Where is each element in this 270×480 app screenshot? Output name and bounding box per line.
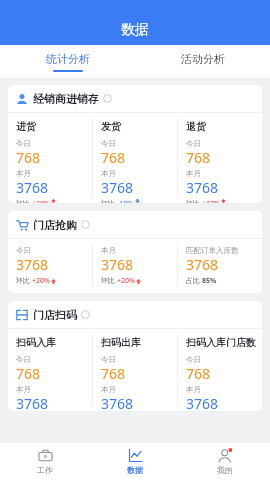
staticText: 活动分析	[181, 52, 225, 66]
staticText: 今日	[16, 246, 31, 255]
staticText: +20%	[32, 199, 50, 203]
staticText: 今日	[186, 355, 201, 364]
staticText: 今日	[101, 355, 116, 364]
staticText: 3768	[186, 255, 219, 274]
staticText: 768	[101, 364, 126, 383]
button[interactable]: 数据	[90, 443, 180, 480]
button[interactable]: 说明	[81, 310, 90, 319]
button[interactable]: 工作	[0, 443, 90, 480]
staticText: 768	[16, 148, 41, 167]
staticText: 本月	[186, 385, 201, 394]
staticText: 768	[186, 364, 211, 383]
staticText: 环比	[101, 276, 117, 286]
staticText: 3768	[16, 255, 49, 274]
staticText: 本月	[16, 385, 31, 394]
staticText: 今日	[16, 139, 31, 148]
staticText: 门店抢购	[33, 218, 77, 232]
staticText: 今日	[101, 139, 116, 148]
staticText: 3768	[101, 394, 134, 411]
staticText: 工作	[37, 465, 53, 475]
staticText: 今日	[186, 139, 201, 148]
button[interactable]: 说明	[81, 220, 90, 229]
staticText: 统计分析	[46, 52, 90, 66]
staticText: 768	[186, 148, 211, 167]
staticText: 数据	[127, 465, 143, 475]
staticText: 本月	[186, 169, 201, 178]
button[interactable]: 经销商进销存	[8, 85, 262, 203]
button[interactable]: 门店扫码	[8, 301, 262, 411]
staticText: 3768	[101, 255, 134, 274]
staticText: 3768	[16, 178, 49, 197]
staticText: 发货	[101, 120, 121, 133]
staticText: 环比	[101, 199, 117, 203]
staticText: -10%	[117, 199, 134, 203]
staticText: 85%	[202, 276, 217, 286]
staticText: 本月	[101, 385, 116, 394]
staticText: 3768	[186, 394, 219, 411]
button[interactable]: 门店抢购	[8, 211, 262, 293]
staticText: 进货	[16, 120, 36, 133]
staticText: 本月	[101, 169, 116, 178]
staticText: +20%	[117, 276, 135, 286]
staticText: 扫码入库门店数	[186, 336, 256, 349]
staticText: 3768	[16, 394, 49, 411]
staticText: 匹配订单入库数	[186, 246, 239, 255]
staticText: 扫码出库	[101, 336, 141, 349]
staticText: 扫码入库	[16, 336, 56, 349]
staticText: +13%	[202, 199, 220, 203]
staticText: 数据	[121, 21, 149, 39]
staticText: 3768	[186, 178, 219, 197]
button[interactable]: 我的	[180, 443, 270, 480]
button[interactable]: 活动分析	[135, 45, 270, 78]
staticText: 3768	[101, 178, 134, 197]
staticText: 本月	[101, 246, 116, 255]
staticText: 我的	[217, 465, 233, 475]
staticText: 占比	[186, 276, 202, 286]
staticText: 门店扫码	[33, 308, 77, 322]
staticText: 经销商进销存	[33, 92, 99, 106]
staticText: 今日	[16, 355, 31, 364]
button[interactable]: 统计分析	[0, 45, 135, 78]
staticText: 本月	[16, 169, 31, 178]
staticText: 环比	[16, 199, 32, 203]
staticText: +20%	[32, 276, 50, 286]
staticText: 环比	[16, 276, 32, 286]
staticText: 退货	[186, 120, 206, 133]
staticText: 768	[16, 364, 41, 383]
button[interactable]: 说明	[103, 94, 112, 103]
staticText: 768	[101, 148, 126, 167]
staticText: 环比	[186, 199, 202, 203]
